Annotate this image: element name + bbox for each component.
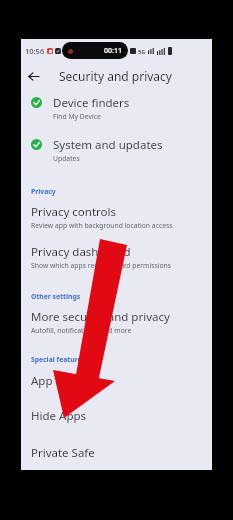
button[interactable]: Back [21,64,45,88]
staticText: Privacy dashboard [31,244,131,260]
staticText: Special features [31,355,86,364]
button[interactable]: Device finders [21,95,212,121]
staticText: Review app with background location acce… [31,221,173,230]
button[interactable]: App Lock [21,373,212,389]
staticText: Privacy controls [31,204,117,220]
staticText: 5G [138,48,146,55]
staticText: Show which apps recently used permission… [31,261,171,270]
staticText: App Lock [31,373,81,389]
button[interactable]: Privacy controls [21,204,212,230]
staticText: 10:56 [25,46,45,56]
staticText: Other settings [31,292,81,301]
staticText: Private Safe [31,445,95,461]
staticText: 00:11 [104,46,122,56]
button[interactable]: Private Safe [21,445,212,461]
staticText: Hide Apps [31,408,87,424]
staticText: Autofill, notifications, and more [31,326,132,335]
button[interactable]: Privacy dashboard [21,244,212,270]
staticText: Updates [53,154,80,163]
button[interactable]: System and updates [21,137,212,163]
staticText: Find My Device [53,112,101,121]
button[interactable]: More security and privacy [21,309,212,335]
staticText: Device finders [53,95,130,111]
staticText: More security and privacy [31,309,170,325]
staticText: Privacy [31,187,56,196]
staticText: Security and privacy [59,68,172,84]
button[interactable]: Hide Apps [21,408,212,424]
staticText: System and updates [53,137,163,153]
